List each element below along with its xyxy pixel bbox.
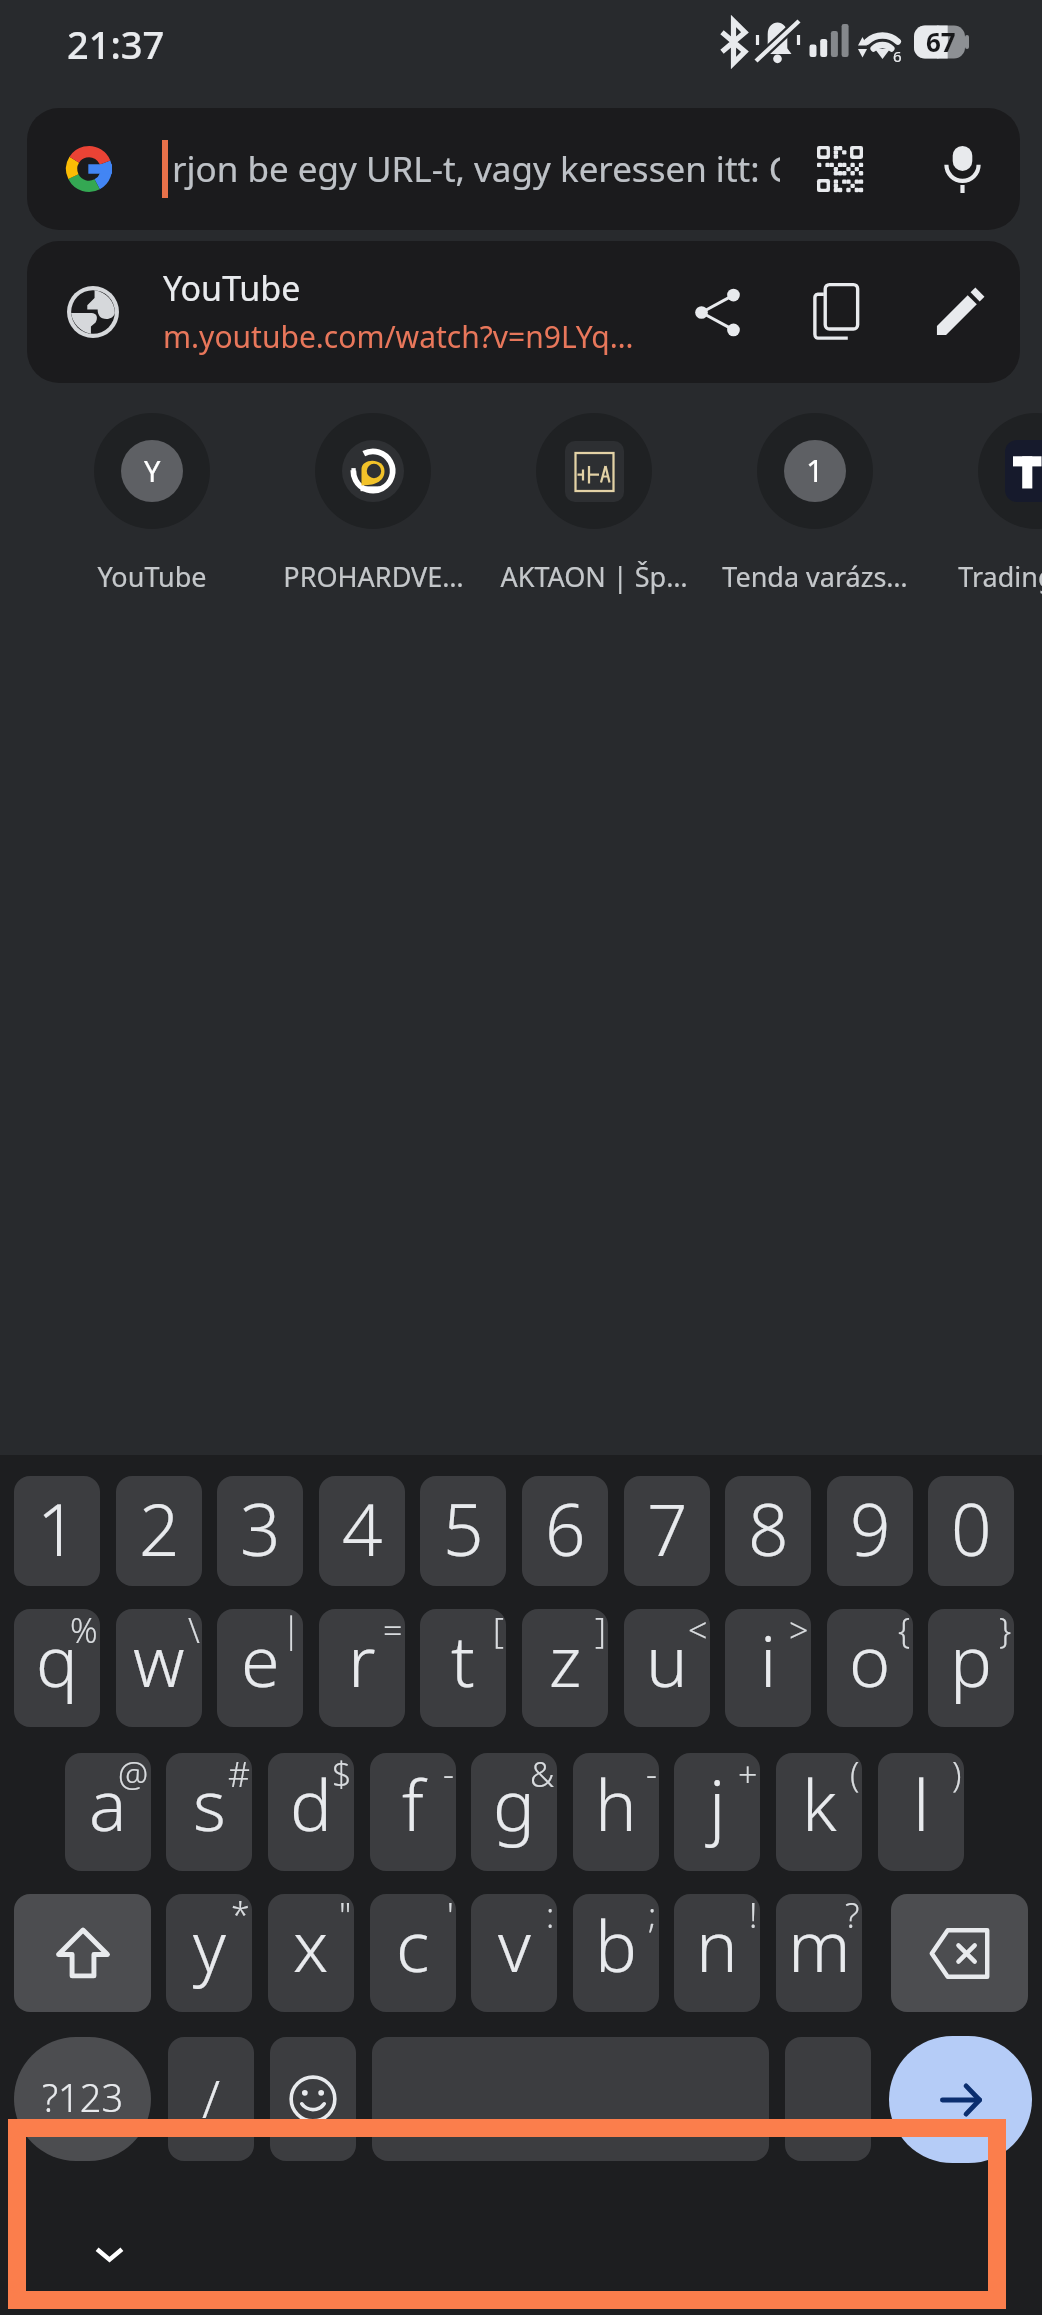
button[interactable]: ?123 xyxy=(14,2037,151,2161)
button[interactable]: 3 xyxy=(217,1476,303,1586)
button[interactable]: TradingView xyxy=(926,410,1042,595)
button[interactable]: e xyxy=(217,1609,303,1727)
button[interactable]: p xyxy=(928,1609,1014,1727)
button[interactable]: w xyxy=(116,1609,202,1727)
staticText: u xyxy=(646,1612,688,1707)
button[interactable]: k xyxy=(776,1753,862,1871)
button[interactable]: y xyxy=(166,1894,252,2012)
button[interactable]: x xyxy=(268,1894,354,2012)
button[interactable]: 1 xyxy=(705,410,925,595)
staticText: b xyxy=(595,1897,637,1992)
button[interactable]: 5 xyxy=(420,1476,506,1586)
button[interactable]: / xyxy=(168,2037,254,2161)
staticText: 6 xyxy=(545,1480,586,1577)
staticText: o xyxy=(849,1612,891,1707)
button[interactable]: Share xyxy=(681,276,753,348)
staticText: YouTube xyxy=(163,265,301,311)
staticText: ( xyxy=(850,1753,860,1797)
button[interactable]: PROHARDVE… xyxy=(263,410,483,595)
button[interactable]: c xyxy=(370,1894,456,2012)
button[interactable]: q xyxy=(14,1609,100,1727)
button[interactable]: g xyxy=(471,1753,557,1871)
staticText: f xyxy=(402,1756,424,1851)
button[interactable]: r xyxy=(319,1609,405,1727)
button[interactable]: f xyxy=(370,1753,456,1871)
staticText: : xyxy=(546,1894,555,1938)
button[interactable]: a xyxy=(65,1753,151,1871)
staticText: w xyxy=(133,1612,185,1707)
staticText: d xyxy=(290,1756,332,1851)
staticText: 8 xyxy=(748,1480,789,1577)
staticText: 5 xyxy=(443,1480,484,1577)
staticText: e xyxy=(241,1612,280,1707)
staticText: + xyxy=(738,1753,758,1797)
staticText: @ xyxy=(118,1753,149,1797)
button[interactable]: h xyxy=(573,1753,659,1871)
staticText: \ xyxy=(188,1609,200,1653)
button[interactable]: Backspace xyxy=(891,1894,1028,2012)
button[interactable]: Search with camera xyxy=(804,133,876,205)
button[interactable]: i xyxy=(725,1609,811,1727)
staticText: & xyxy=(530,1753,555,1797)
button[interactable]: 1 xyxy=(14,1476,100,1586)
button[interactable]: 0 xyxy=(928,1476,1014,1586)
button[interactable]: 9 xyxy=(827,1476,913,1586)
staticText: a xyxy=(89,1756,127,1851)
staticText: " xyxy=(339,1894,352,1938)
staticText: - xyxy=(443,1753,454,1797)
staticText: YouTube xyxy=(97,558,207,595)
staticText: 9 xyxy=(850,1480,891,1577)
staticText: ?123 xyxy=(42,2071,124,2123)
staticText: 6 xyxy=(893,46,902,66)
staticText: ' xyxy=(447,1894,454,1938)
button[interactable]: u xyxy=(624,1609,710,1727)
staticText: Tenda varázs… xyxy=(722,558,908,595)
button[interactable]: YouTube xyxy=(27,241,1020,383)
button[interactable]: d xyxy=(268,1753,354,1871)
button[interactable]: Copy xyxy=(800,276,872,348)
staticText: 1 xyxy=(37,1480,78,1577)
staticText: x xyxy=(293,1897,329,1992)
button[interactable]: Shift xyxy=(14,1894,151,2012)
button[interactable]: 4 xyxy=(319,1476,405,1586)
staticText: p xyxy=(950,1612,992,1707)
button[interactable]: Hide keyboard xyxy=(79,2226,139,2282)
staticText: m xyxy=(788,1897,851,1992)
button[interactable]: 6 xyxy=(522,1476,608,1586)
button[interactable]: rjon be egy URL-t, vagy keressen itt: Go… xyxy=(27,108,1020,230)
button[interactable]: t xyxy=(420,1609,506,1727)
staticText: # xyxy=(228,1753,250,1797)
button[interactable]: 7 xyxy=(624,1476,710,1586)
button[interactable]: l xyxy=(878,1753,964,1871)
button[interactable]: z xyxy=(522,1609,608,1727)
staticText: AKTAON | Šp… xyxy=(500,558,688,595)
button[interactable]: j xyxy=(674,1753,760,1871)
staticText: 7 xyxy=(647,1480,688,1577)
button[interactable]: n xyxy=(674,1894,760,2012)
button[interactable]: m xyxy=(776,1894,862,2012)
staticText: % xyxy=(70,1609,98,1653)
staticText: TradingView xyxy=(958,558,1042,595)
button[interactable]: v xyxy=(471,1894,557,2012)
button[interactable]: Y xyxy=(42,410,262,595)
staticText: ; xyxy=(648,1894,657,1938)
staticText: 1 xyxy=(806,449,824,491)
button[interactable]: o xyxy=(827,1609,913,1727)
button[interactable]: Voice search xyxy=(926,133,998,205)
button[interactable]: s xyxy=(166,1753,252,1871)
button[interactable]: b xyxy=(573,1894,659,2012)
staticText: r xyxy=(348,1612,376,1707)
staticText: n xyxy=(696,1897,738,1992)
staticText: z xyxy=(549,1612,582,1707)
staticText: 0 xyxy=(951,1480,992,1577)
button[interactable]: 8 xyxy=(725,1476,811,1586)
button[interactable]: Comma xyxy=(785,2037,871,2161)
button[interactable]: Space xyxy=(372,2037,769,2161)
button[interactable]: AKTAON | Šp… xyxy=(484,410,704,595)
button[interactable]: Edit xyxy=(924,276,996,348)
button[interactable]: 2 xyxy=(116,1476,202,1586)
button[interactable]: Go xyxy=(889,2036,1032,2163)
button[interactable]: Emoji xyxy=(270,2037,356,2161)
staticText: PROHARDVE… xyxy=(283,558,464,595)
staticText: - xyxy=(646,1753,657,1797)
